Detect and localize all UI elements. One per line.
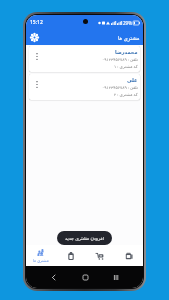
button[interactable]: Settings [26,30,42,45]
staticText: افزودن مشتری جدید [65,235,105,241]
staticText: محمدرضا [115,49,138,55]
button[interactable]: More options [29,46,140,72]
staticText: تلفن : ۰۹۱۲۳۴۵۶۷۸۹ [102,85,138,91]
button[interactable]: Products [85,245,114,266]
button[interactable]: More options [32,46,41,68]
staticText: تلفن : ۰۹۱۲۳۴۵۶۷۸۹ [102,57,138,63]
button[interactable]: Home [80,272,90,282]
button[interactable]: More options [29,74,140,100]
button[interactable]: Recents [111,272,121,282]
staticText: علی [127,77,138,83]
button[interactable]: Reports [114,245,143,266]
staticText: کد مشتری : ۲ [114,92,138,98]
button[interactable]: افزودن مشتری جدید [57,231,112,245]
button[interactable]: Customers [26,245,56,266]
staticText: 15:12 [30,19,43,26]
staticText: 29% [123,20,132,26]
staticText: مشتری ها [118,34,140,41]
button[interactable]: Back [48,272,58,282]
button[interactable]: Orders [56,245,85,266]
staticText: مشتری ها [33,258,49,263]
button[interactable]: More options [32,74,41,96]
staticText: کد مشتری : ۱ [114,64,138,70]
